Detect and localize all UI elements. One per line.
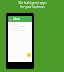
staticText: Inbox bbox=[13, 17, 20, 21]
button[interactable] bbox=[8, 27, 32, 31]
staticText: for your business bbox=[20, 5, 45, 9]
button[interactable] bbox=[8, 23, 32, 27]
button[interactable]: Compose bbox=[27, 53, 31, 57]
button[interactable]: Menu bbox=[9, 18, 12, 21]
staticText: We build great apps bbox=[18, 1, 47, 5]
